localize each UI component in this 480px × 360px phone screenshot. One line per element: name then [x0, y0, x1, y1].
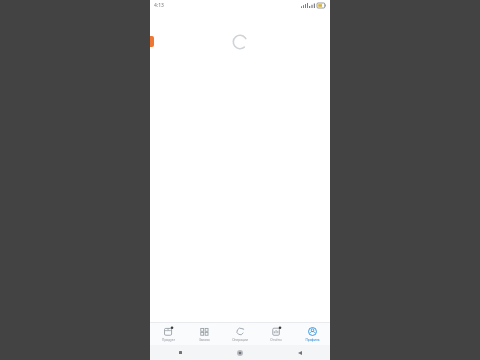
staticText: Заказы	[199, 338, 210, 342]
staticText: Отчёты	[270, 338, 282, 342]
staticText: 4:13	[154, 2, 164, 9]
staticText: Продукт	[162, 338, 175, 342]
button[interactable]: Операции	[222, 323, 258, 345]
button[interactable]: Home	[210, 345, 270, 360]
button[interactable]: Профиль	[294, 323, 330, 345]
staticText: Профиль	[305, 338, 320, 342]
button[interactable]: Заказы	[186, 323, 222, 345]
button[interactable]: Отчёты	[258, 323, 294, 345]
button[interactable]: Back	[270, 345, 330, 360]
staticText: Операции	[232, 338, 248, 342]
button[interactable]: Продукт	[150, 323, 186, 345]
button[interactable]: Side tab	[150, 36, 154, 47]
button[interactable]: Recent apps	[150, 345, 210, 360]
